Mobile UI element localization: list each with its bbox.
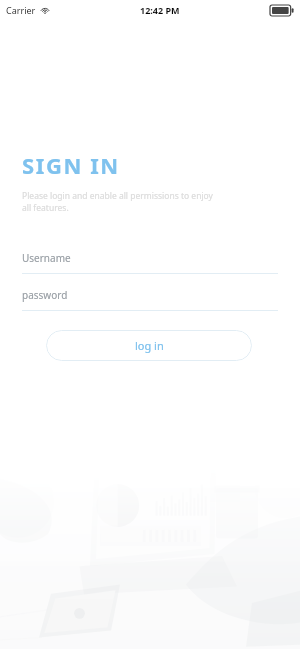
staticText: 12:42 PM	[140, 4, 180, 16]
staticText: Username	[22, 251, 71, 265]
button[interactable]: log in	[46, 330, 252, 361]
staticText: log in	[135, 338, 164, 353]
staticText: password	[22, 288, 68, 302]
staticText: Carrier	[6, 4, 36, 16]
staticText: Please login and enable all permissions …	[22, 190, 213, 214]
staticText: SIGN IN	[22, 150, 120, 180]
